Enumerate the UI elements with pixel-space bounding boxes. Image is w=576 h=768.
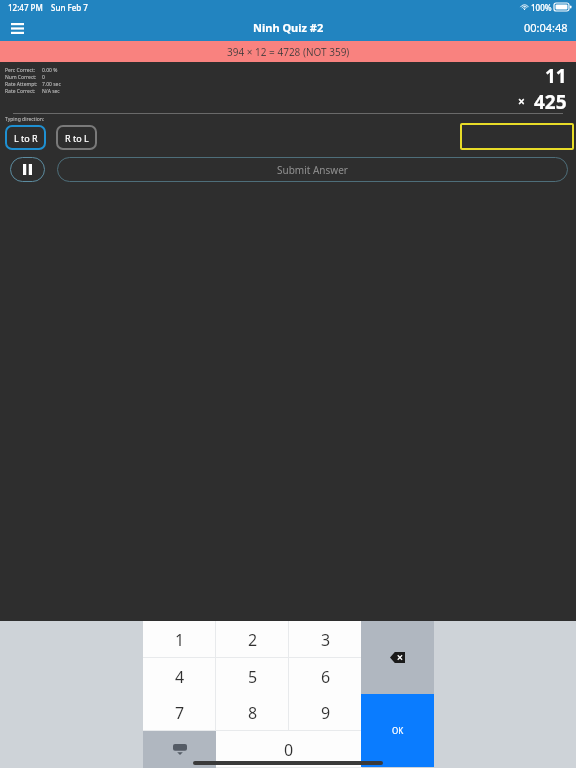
staticText: 425 xyxy=(534,89,567,112)
button[interactable]: 2 xyxy=(216,621,289,658)
staticText: × xyxy=(518,93,525,109)
staticText: 5 xyxy=(248,666,258,688)
staticText: 11 xyxy=(545,63,567,89)
button[interactable]: Backspace xyxy=(361,621,434,694)
button[interactable]: Submit Answer xyxy=(57,157,568,182)
staticText: Ninh Quiz #2 xyxy=(253,20,324,35)
staticText: Sun Feb 7 xyxy=(51,2,88,13)
staticText: L to R xyxy=(14,132,38,144)
staticText: 1 xyxy=(175,629,185,651)
button[interactable]: 4 xyxy=(143,658,216,695)
staticText: Rate Correct: xyxy=(5,88,36,95)
staticText: 7.00 sec xyxy=(42,81,61,88)
button[interactable]: 7 xyxy=(143,694,216,731)
staticText: Typing direction: xyxy=(5,116,45,123)
staticText: OK xyxy=(392,725,404,736)
button[interactable]: 9 xyxy=(289,694,362,731)
button[interactable]: 6 xyxy=(289,658,362,695)
button[interactable]: Pause xyxy=(10,157,45,182)
staticText: 0.00 % xyxy=(42,67,58,74)
staticText: Rate Attempt: xyxy=(5,81,38,88)
staticText: 0 xyxy=(284,739,294,761)
button[interactable]: L to R xyxy=(5,125,46,150)
staticText: 8 xyxy=(248,702,258,724)
staticText: 12:47 PM xyxy=(8,2,43,13)
button[interactable]: 3 xyxy=(289,621,362,658)
button[interactable]: 0 xyxy=(216,731,362,768)
button[interactable]: 1 xyxy=(143,621,216,658)
button[interactable]: OK xyxy=(361,694,434,767)
staticText: 7 xyxy=(175,702,185,724)
staticText: Perc Correct: xyxy=(5,67,36,74)
staticText: 0 xyxy=(42,74,45,81)
button[interactable]: Hide keyboard xyxy=(143,731,216,768)
staticText: 6 xyxy=(321,666,331,688)
staticText: 00:04:48 xyxy=(524,20,568,35)
staticText: 4 xyxy=(175,666,185,688)
button[interactable]: 5 xyxy=(216,658,289,695)
staticText: Submit Answer xyxy=(277,163,348,177)
staticText: N/A sec xyxy=(42,88,60,95)
button[interactable]: Menu xyxy=(5,16,29,40)
staticText: R to L xyxy=(65,132,89,144)
staticText: 9 xyxy=(321,702,331,724)
button[interactable]: R to L xyxy=(56,125,97,150)
staticText: 100% xyxy=(531,2,552,13)
staticText: 3 xyxy=(321,629,331,651)
staticText: 394 × 12 = 4728 (NOT 359) xyxy=(227,45,350,59)
staticText: 2 xyxy=(248,629,258,651)
button[interactable]: 8 xyxy=(216,694,289,731)
staticText: Num Correct: xyxy=(5,74,37,81)
button[interactable]: Answer input xyxy=(460,123,574,150)
